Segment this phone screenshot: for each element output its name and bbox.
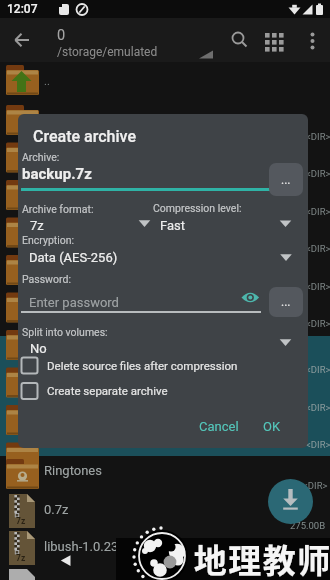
button[interactable] <box>0 492 330 529</box>
button[interactable] <box>21 355 261 375</box>
button[interactable] <box>0 529 116 566</box>
button[interactable] <box>0 455 330 492</box>
staticText: Cancel <box>199 419 239 434</box>
staticText: 7z <box>16 516 26 526</box>
button[interactable] <box>21 381 261 401</box>
staticText: Create separate archive <box>47 384 168 397</box>
button[interactable] <box>21 337 296 359</box>
staticText: <DIR> <box>306 168 330 179</box>
staticText: Archive: <box>22 151 60 163</box>
button[interactable]: ... <box>269 287 303 317</box>
staticText: Split into volumes: <box>22 326 108 338</box>
staticText: 12:07 <box>7 2 38 16</box>
button[interactable] <box>21 246 296 268</box>
button[interactable] <box>224 26 253 56</box>
button[interactable] <box>8 26 38 56</box>
button[interactable] <box>258 26 290 56</box>
button[interactable]: Cancel <box>190 413 248 439</box>
staticText: <DIR> <box>306 439 330 450</box>
staticText: Ringtones <box>44 463 102 478</box>
staticText: 0 <box>57 27 66 44</box>
staticText: Fast <box>160 218 186 233</box>
staticText: No <box>30 341 47 356</box>
staticText: 0.7z <box>44 502 69 517</box>
staticText: Create archive <box>33 127 136 146</box>
button[interactable] <box>268 479 313 524</box>
staticText: <DIR> <box>306 206 330 217</box>
button[interactable] <box>153 214 296 236</box>
staticText: <DIR> <box>306 364 330 375</box>
button[interactable]: ... <box>269 163 303 196</box>
staticText: 7z <box>16 553 26 563</box>
button[interactable] <box>238 288 264 310</box>
staticText: <DIR> <box>306 131 330 142</box>
button[interactable] <box>21 160 264 191</box>
staticText: Data (AES-256) <box>29 250 118 265</box>
staticText: Delete source files after compression <box>47 359 238 372</box>
staticText: /storage/emulated <box>57 45 158 59</box>
button[interactable] <box>21 214 151 236</box>
staticText: ... <box>281 173 291 187</box>
staticText: <DIR> <box>306 402 330 413</box>
staticText: 275.00B <box>290 520 326 531</box>
button[interactable] <box>21 288 236 313</box>
staticText: libush-1.0.23.7z <box>44 539 136 554</box>
staticText: 地理教师 <box>193 535 330 580</box>
staticText: <DIR> <box>306 243 330 254</box>
button[interactable] <box>52 22 217 60</box>
staticText: <DIR> <box>306 318 330 329</box>
button[interactable] <box>298 26 326 56</box>
staticText: <DIR> <box>306 281 330 292</box>
button[interactable] <box>0 61 330 98</box>
staticText: <DIR> <box>303 480 328 491</box>
staticText: Archive format: <box>22 203 94 215</box>
staticText: ... <box>281 295 291 309</box>
staticText: backup.7z <box>22 165 92 183</box>
staticText: 7z <box>30 218 44 233</box>
staticText: OK <box>263 419 281 434</box>
staticText: .. <box>44 75 50 88</box>
staticText: Encryption: <box>22 234 75 246</box>
staticText: Compression level: <box>153 202 242 214</box>
staticText: Password: <box>22 273 71 285</box>
staticText: Enter password <box>29 295 119 310</box>
button[interactable]: OK <box>252 413 292 439</box>
